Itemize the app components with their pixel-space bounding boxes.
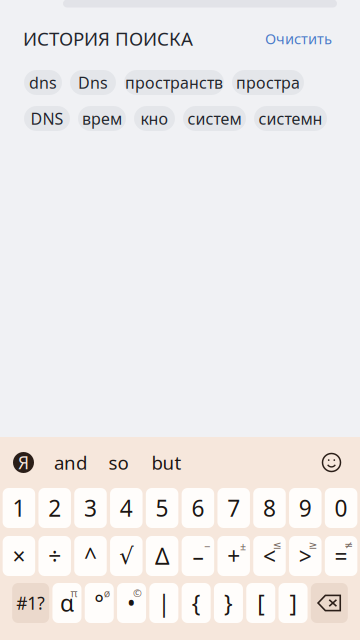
button[interactable]: { [182,583,211,623]
staticText: { [192,588,201,618]
staticText: 6 [191,493,204,523]
button[interactable]: 2 [38,488,71,528]
button[interactable]: 0 [325,488,357,528]
button[interactable]: Очистить [265,23,332,54]
staticText: but [151,450,181,475]
button[interactable]: 1 [3,488,35,528]
button[interactable]: so [94,445,142,479]
staticText: dns [29,72,57,93]
staticText: 1 [12,493,25,523]
staticText: 7 [227,493,240,523]
staticText: × [12,541,25,571]
button[interactable]: + [217,536,250,576]
button[interactable]: 9 [289,488,322,528]
staticText: – [192,541,203,571]
staticText: Я [18,451,29,474]
button[interactable]: = [325,536,357,576]
button[interactable]: Δ [146,536,178,576]
button[interactable]: кно [134,106,175,131]
button[interactable]: Yandex [13,452,34,473]
button[interactable]: | [149,583,178,623]
button[interactable]: 7 [217,488,250,528]
staticText: Δ [155,541,169,571]
button[interactable]: пространств [124,70,224,95]
button[interactable]: 5 [146,488,178,528]
staticText: 4 [120,493,133,523]
staticText: [ [257,588,264,618]
staticText: врем [82,108,122,129]
staticText: and [54,450,87,475]
button[interactable]: > [289,536,322,576]
staticText: + [227,541,240,571]
staticText: простра [236,72,300,93]
button[interactable]: #1? [12,583,49,623]
staticText: α [60,588,74,618]
button[interactable]: 8 [253,488,286,528]
button[interactable]: ° [85,583,114,623]
staticText: ‒ [204,539,210,553]
button[interactable]: Emoji [322,453,341,472]
button[interactable]: 6 [182,488,214,528]
staticText: √ [119,543,133,569]
staticText: 9 [299,493,312,523]
button[interactable]: ] [279,583,308,623]
staticText: } [224,588,233,618]
button[interactable]: Delete [311,583,348,623]
button[interactable]: × [3,536,35,576]
staticText: ° [94,588,104,618]
staticText: пространств [125,72,223,93]
staticText: Dns [78,72,108,93]
staticText: π [70,586,77,600]
staticText: © [133,586,142,600]
button[interactable]: Dns [70,70,116,95]
staticText: 8 [263,493,276,523]
button[interactable]: систем [183,106,246,131]
button[interactable]: – [182,536,214,576]
button[interactable]: простра [232,70,304,95]
button[interactable]: < [253,536,286,576]
button[interactable]: врем [78,106,126,131]
button[interactable]: and [46,445,94,479]
staticText: < [263,541,276,571]
staticText: Очистить [265,29,332,48]
staticText: ø [104,586,110,600]
staticText: #1? [16,591,45,614]
staticText: ] [290,588,297,618]
staticText: so [108,450,128,475]
staticText: 0 [335,493,348,523]
staticText: | [158,588,170,618]
staticText: кно [140,108,168,129]
staticText: 2 [48,493,61,523]
staticText: ≥ [309,539,318,551]
staticText: ≠ [344,539,353,551]
staticText: 3 [84,493,97,523]
button[interactable]: [ [246,583,275,623]
staticText: ÷ [48,541,61,571]
staticText: ^ [84,541,97,571]
staticText: 5 [156,493,169,523]
button[interactable]: } [214,583,243,623]
button[interactable]: but [142,445,190,479]
button[interactable]: 3 [74,488,107,528]
button[interactable]: α [52,583,81,623]
staticText: системн [258,108,322,129]
staticText: • [127,588,136,618]
button[interactable]: DNS [24,106,70,131]
button[interactable]: ÷ [38,536,71,576]
button[interactable]: ^ [74,536,107,576]
button[interactable]: √ [110,536,142,576]
button[interactable]: • [117,583,146,623]
staticText: ИСТОРИЯ ПОИСКА [23,26,193,51]
staticText: DNS [30,108,63,129]
staticText: систем [187,108,241,129]
staticText: = [335,541,348,571]
button[interactable]: системн [254,106,327,131]
staticText: ± [240,539,246,553]
button[interactable]: 4 [110,488,142,528]
button[interactable]: dns [24,70,62,95]
staticText: > [299,541,312,571]
staticText: ≤ [273,539,282,551]
